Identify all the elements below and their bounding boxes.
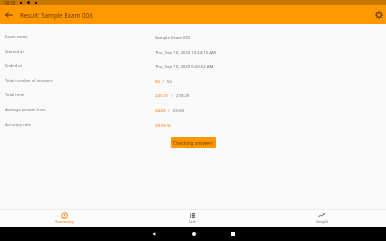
staticText: Total number of answers (5, 78, 53, 84)
button[interactable]: Back (0, 5, 17, 24)
staticText: List (189, 219, 196, 225)
staticText: 56 (167, 78, 172, 84)
staticText: Thu, Sep 10, 2020 6:49:52 AM (155, 63, 214, 69)
button[interactable]: Settings (369, 5, 386, 24)
staticText: 270:29 (176, 92, 190, 98)
staticText: 05:08 (173, 107, 184, 113)
staticText: / (169, 92, 176, 98)
staticText: Started at (5, 49, 24, 55)
staticText: Summary (55, 219, 74, 225)
staticText: Sample Exam 003 (155, 34, 191, 40)
staticText: 58.93 % (155, 122, 171, 128)
staticText: Total time (5, 92, 25, 98)
staticText: / (166, 107, 173, 113)
button[interactable]: List (128, 210, 257, 227)
button[interactable]: Checking answers (171, 137, 216, 148)
staticText: Ended at (5, 63, 22, 69)
staticText: Thu, Sep 10, 2020 10:24:15 AM (155, 49, 216, 55)
staticText: 18:33 (4, 0, 16, 5)
staticText: 56 (155, 78, 160, 84)
staticText: / (160, 78, 167, 84)
staticText: Checking answers (173, 140, 214, 146)
staticText: 04:05 (155, 107, 166, 113)
button[interactable]: Graph (257, 210, 386, 227)
staticText: Exam name (5, 34, 28, 40)
staticText: 241:21 (155, 92, 169, 98)
staticText: Average answer time (5, 107, 46, 113)
staticText: Accuracy rate (5, 122, 31, 128)
staticText: Result: Sample Exam 003 (20, 11, 93, 19)
button[interactable]: Summary (0, 210, 128, 227)
staticText: Graph (316, 219, 328, 225)
